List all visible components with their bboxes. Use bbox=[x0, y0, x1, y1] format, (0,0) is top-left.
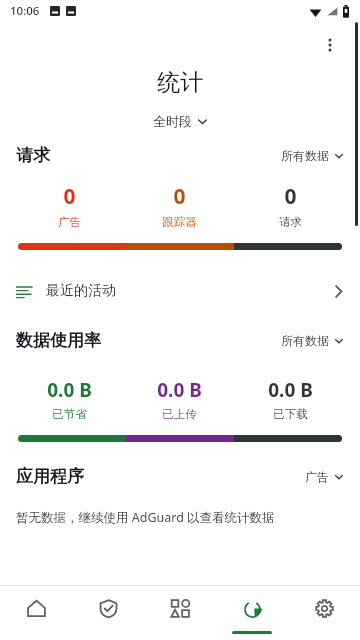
staticText: 统计 bbox=[157, 68, 203, 97]
button[interactable]: 0 bbox=[124, 182, 235, 229]
staticText: 请求 bbox=[16, 145, 50, 166]
button[interactable]: 0.0 B bbox=[124, 377, 235, 421]
button[interactable]: 所有数据 bbox=[277, 330, 348, 351]
staticText: 0.0 B bbox=[157, 377, 202, 403]
staticText: 广告 bbox=[58, 215, 81, 229]
staticText: 最近的活动 bbox=[46, 282, 116, 300]
button[interactable]: 0.0 B bbox=[235, 377, 346, 421]
button[interactable]: Settings bbox=[288, 586, 360, 640]
staticText: 10:06 bbox=[10, 3, 40, 19]
staticText: 请求 bbox=[279, 215, 302, 229]
staticText: 0 bbox=[284, 182, 297, 211]
staticText: 0.0 B bbox=[268, 377, 313, 403]
button[interactable]: 广告 bbox=[301, 466, 348, 487]
staticText: 暂无数据，继续使用 AdGuard 以查看统计数据 bbox=[16, 509, 275, 526]
button[interactable]: Apps bbox=[144, 586, 216, 640]
staticText: 0 bbox=[63, 182, 76, 211]
staticText: 广告 bbox=[305, 469, 329, 484]
staticText: 已节省 bbox=[52, 407, 87, 421]
staticText: 0.0 B bbox=[47, 377, 92, 403]
button[interactable]: 0 bbox=[14, 182, 124, 229]
button[interactable]: Protection bbox=[72, 586, 144, 640]
button[interactable]: More options bbox=[310, 25, 350, 65]
button[interactable]: 全时段 bbox=[149, 111, 212, 131]
staticText: 数据使用率 bbox=[16, 330, 101, 351]
button[interactable]: 最近的活动 bbox=[0, 274, 360, 308]
staticText: 已上传 bbox=[162, 407, 197, 421]
staticText: 全时段 bbox=[153, 113, 192, 129]
button[interactable]: 所有数据 bbox=[277, 145, 348, 166]
button[interactable]: Statistics bbox=[216, 586, 288, 640]
button[interactable]: Home bbox=[0, 586, 72, 640]
staticText: 已下载 bbox=[273, 407, 308, 421]
staticText: 应用程序 bbox=[16, 466, 84, 487]
staticText: 所有数据 bbox=[281, 333, 329, 348]
button[interactable]: 0 bbox=[235, 182, 346, 229]
staticText: 跟踪器 bbox=[162, 215, 197, 229]
staticText: 所有数据 bbox=[281, 148, 329, 163]
staticText: 0 bbox=[173, 182, 186, 211]
button[interactable]: 0.0 B bbox=[14, 377, 124, 421]
